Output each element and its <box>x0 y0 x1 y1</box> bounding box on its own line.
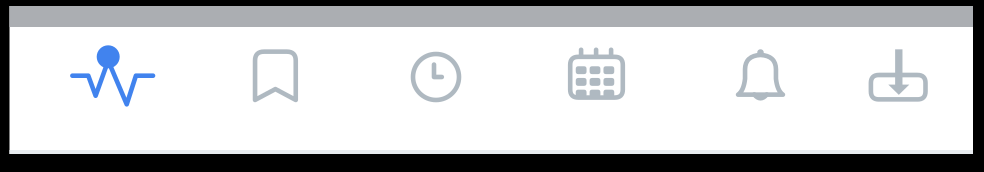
button[interactable]: Downloads <box>834 28 964 150</box>
button[interactable]: Notifications <box>681 28 841 150</box>
button[interactable]: History <box>356 28 516 150</box>
button[interactable]: Activity <box>24 28 196 150</box>
button[interactable]: Calendar <box>517 28 677 150</box>
button[interactable]: Bookmarks <box>196 28 356 150</box>
